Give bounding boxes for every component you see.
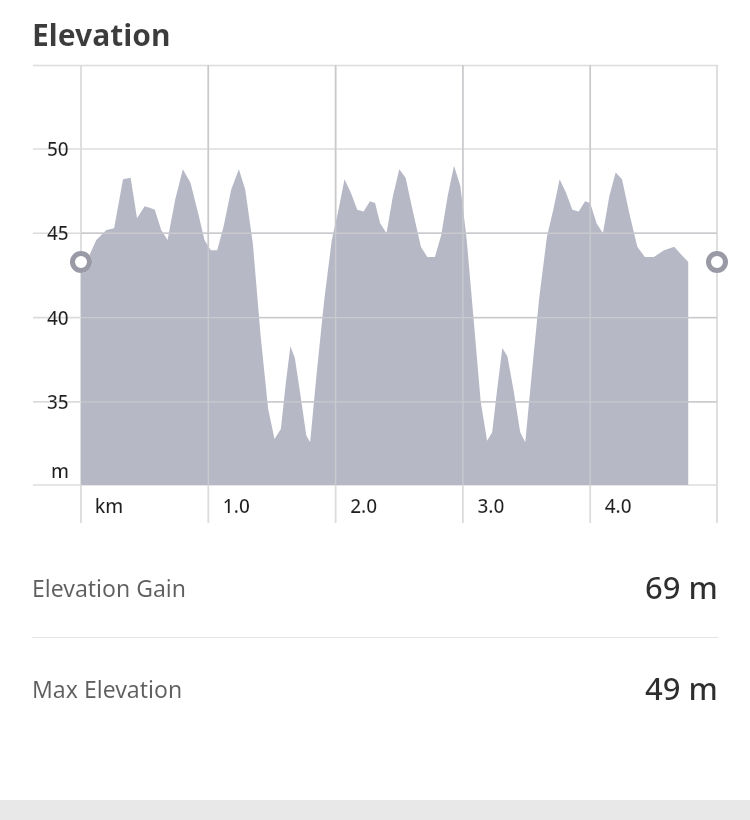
button[interactable]: Elevation Gain [0, 537, 750, 637]
button[interactable]: Max Elevation [0, 638, 750, 738]
staticText: Elevation [32, 14, 171, 55]
staticText: 69 m [645, 566, 718, 608]
button[interactable]: Elevation profile chart [0, 65, 750, 537]
staticText: Max Elevation [32, 673, 183, 704]
staticText: Elevation Gain [32, 572, 186, 603]
staticText: 49 m [645, 667, 718, 709]
